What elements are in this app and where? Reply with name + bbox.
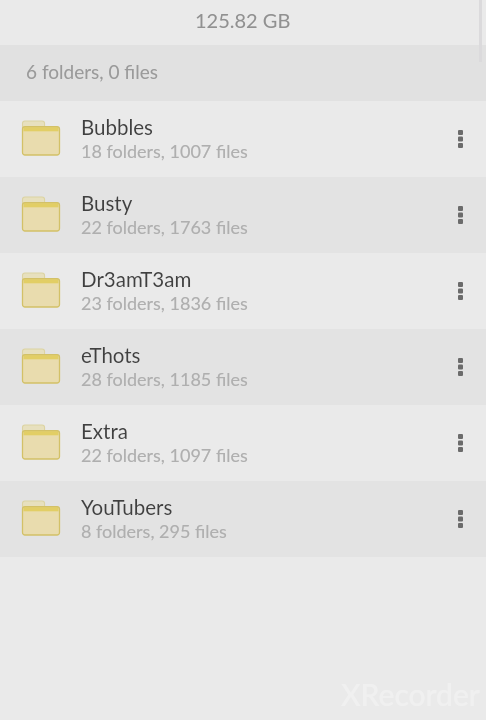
button[interactable]: Dr3amT3am <box>0 253 486 329</box>
staticText: Extra <box>81 419 128 444</box>
button[interactable]: Busty <box>0 177 486 253</box>
staticText: 6 folders, 0 files <box>26 60 158 83</box>
button[interactable]: More options <box>434 481 486 557</box>
button[interactable]: More options <box>434 101 486 177</box>
button[interactable]: More options <box>434 253 486 329</box>
staticText: 23 folders, 1836 files <box>81 292 248 314</box>
button[interactable]: More options <box>434 405 486 481</box>
staticText: Bubbles <box>81 115 153 140</box>
button[interactable]: Extra <box>0 405 486 481</box>
staticText: 8 folders, 295 files <box>81 520 227 542</box>
button[interactable]: More options <box>434 329 486 405</box>
staticText: Busty <box>81 191 133 216</box>
staticText: 22 folders, 1097 files <box>81 444 248 466</box>
staticText: 18 folders, 1007 files <box>81 140 248 162</box>
button[interactable]: More options <box>434 177 486 253</box>
button[interactable]: 125.82 GB <box>0 0 486 45</box>
button[interactable]: eThots <box>0 329 486 405</box>
staticText: 28 folders, 1185 files <box>81 368 248 390</box>
staticText: Dr3amT3am <box>81 267 192 292</box>
staticText: 22 folders, 1763 files <box>81 216 248 238</box>
staticText: YouTubers <box>81 495 173 520</box>
staticText: 125.82 GB <box>195 8 291 32</box>
button[interactable]: Bubbles <box>0 101 486 177</box>
staticText: eThots <box>81 343 141 368</box>
button[interactable]: YouTubers <box>0 481 486 557</box>
